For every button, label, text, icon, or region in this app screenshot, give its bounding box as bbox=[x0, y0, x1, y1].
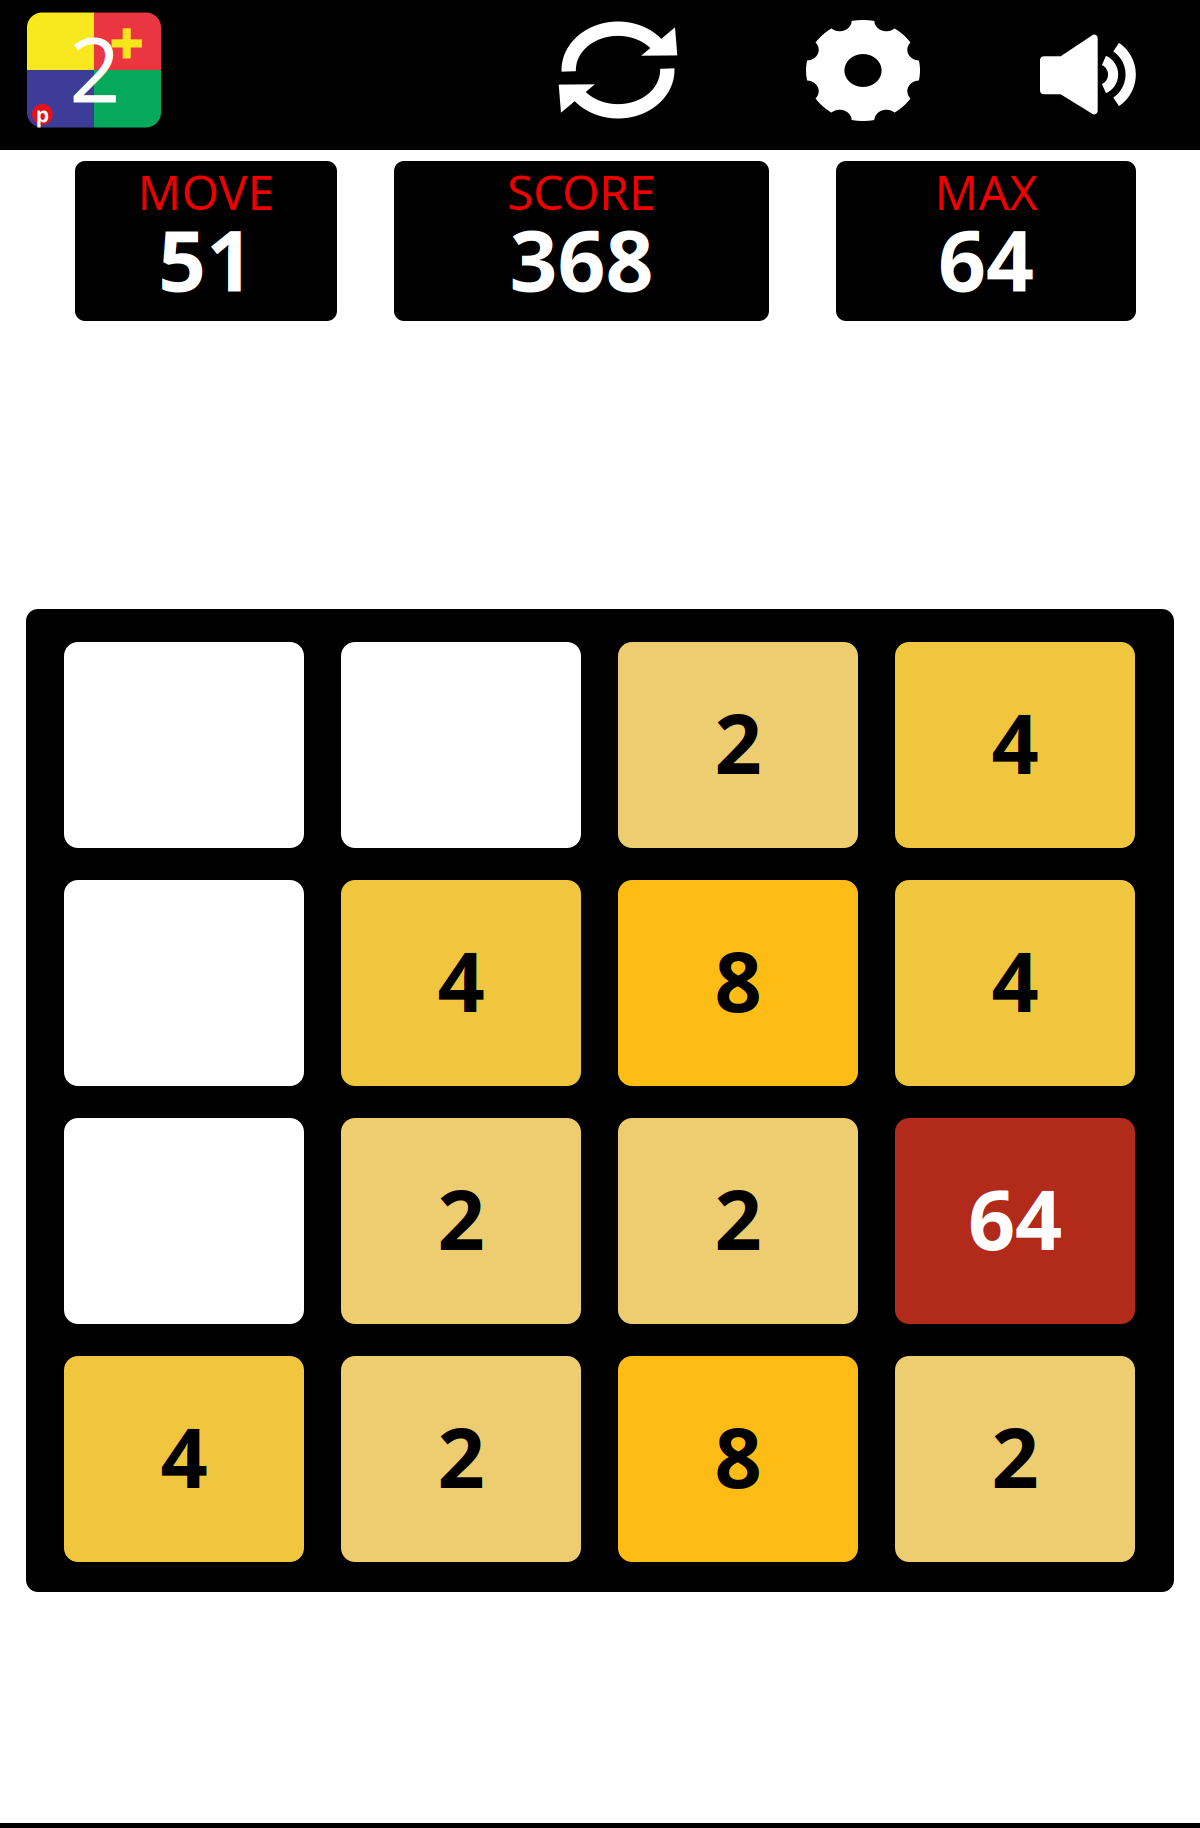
staticText: SCORE bbox=[507, 160, 656, 223]
staticText: + bbox=[109, 1, 145, 82]
staticText: 8 bbox=[714, 925, 761, 1035]
staticText: 4 bbox=[991, 925, 1038, 1035]
button[interactable]: 2048 Plus bbox=[7, 0, 180, 145]
staticText: 51 bbox=[158, 203, 254, 315]
staticText: 2 bbox=[437, 1401, 484, 1511]
staticText: 64 bbox=[938, 203, 1034, 315]
staticText: 2 bbox=[714, 687, 761, 797]
staticText: 4 bbox=[437, 925, 484, 1035]
staticText: MAX bbox=[934, 160, 1037, 223]
staticText: 64 bbox=[968, 1163, 1062, 1273]
staticText: 2 bbox=[714, 1163, 761, 1273]
button[interactable]: Sound on bbox=[1018, 0, 1158, 149]
staticText: 2 bbox=[437, 1163, 484, 1273]
staticText: MOVE bbox=[137, 160, 274, 223]
staticText: 368 bbox=[509, 203, 653, 315]
button[interactable]: Settings bbox=[788, 0, 938, 145]
staticText: 2 bbox=[69, 9, 120, 127]
staticText: 4 bbox=[991, 687, 1038, 797]
button[interactable]: Restart game bbox=[543, 0, 693, 145]
staticText: 4 bbox=[160, 1401, 207, 1511]
staticText: 8 bbox=[714, 1401, 761, 1511]
staticText: 2 bbox=[991, 1401, 1038, 1511]
staticText: p bbox=[36, 100, 49, 128]
